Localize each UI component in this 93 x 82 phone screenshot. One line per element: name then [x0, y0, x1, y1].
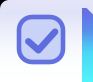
button[interactable]: Task complete — [0, 0, 93, 82]
